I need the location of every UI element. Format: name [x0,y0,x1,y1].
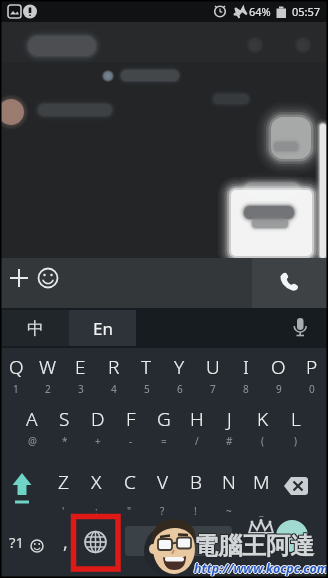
button[interactable] [78,518,114,568]
button[interactable]: 中 [2,310,69,346]
staticText: : [95,504,98,518]
staticText: http://www.kocpc.com.tw [194,560,328,577]
staticText: 8 [243,382,249,396]
staticText: 電腦王阿達 [195,531,315,561]
button[interactable]: E [64,351,97,397]
staticText: 1 [13,382,19,396]
staticText: ?1 [9,532,25,552]
button[interactable]: J [213,403,246,449]
staticText: Y [174,354,185,380]
staticText: ~ [226,504,232,518]
staticText: http://www.kocpc.com.tw [193,560,328,577]
staticText: 4 [111,382,117,396]
staticText: 電腦王阿達 [195,530,315,560]
staticText: = [161,434,167,448]
button[interactable]: T [130,351,163,397]
staticText: B [190,469,202,495]
staticText: 0 [309,382,315,396]
button[interactable]: N [212,466,245,518]
staticText: 3 [78,382,84,396]
button[interactable]: A [16,403,48,449]
staticText: ! [194,504,197,518]
button[interactable] [276,520,308,552]
staticText: " [127,504,132,518]
staticText: X [91,469,102,495]
staticText: ' [62,504,65,518]
button[interactable]: L [279,403,312,449]
staticText: J [227,406,232,432]
button[interactable] [0,258,252,308]
staticText: 電腦王阿達 [194,531,314,561]
staticText: G [157,406,171,432]
button[interactable]: Z [46,466,80,518]
staticText: 電腦王阿達 [193,530,313,560]
staticText: M [253,469,270,495]
button[interactable] [284,312,316,344]
button[interactable]: I [229,351,262,397]
staticText: 5 [144,382,150,396]
staticText: En [93,317,113,340]
button[interactable]: C [113,466,146,518]
button[interactable]: Q [0,351,32,397]
button[interactable]: S [48,403,81,449]
staticText: 電腦王阿達 [194,532,314,562]
staticText: ? [160,504,165,518]
staticText: http://www.kocpc.com.tw [195,560,328,577]
button[interactable]: K [246,403,279,449]
staticText: 電腦王阿達 [195,532,315,562]
staticText: O [271,354,286,380]
staticText: F [126,406,136,432]
button[interactable]: P [295,351,328,397]
button[interactable]: ?1 [4,518,56,568]
staticText: ( [261,434,264,448]
staticText: 中 [27,318,44,339]
staticText: A [26,406,38,432]
button[interactable] [0,22,328,62]
staticText: V [157,469,169,495]
staticText: W [39,354,57,380]
staticText: I [243,354,249,380]
button[interactable]: O [262,351,295,397]
staticText: R [108,354,120,380]
button[interactable]: U [196,351,229,397]
staticText: D [91,406,105,432]
staticText: H [190,406,204,432]
staticText: - [129,434,133,448]
button[interactable]: En [69,310,136,346]
button[interactable] [278,466,326,514]
button[interactable]: G [147,403,180,449]
button[interactable]: X [80,466,113,518]
button[interactable]: , [63,530,68,555]
button[interactable]: D [81,403,114,449]
button[interactable] [2,466,44,514]
staticText: http://www.kocpc.com.tw [194,559,328,576]
staticText: 6 [177,382,183,396]
staticText: / [195,434,199,448]
button[interactable]: M [245,466,278,518]
staticText: 9 [276,382,282,396]
staticText: * [62,434,68,448]
staticText: # [226,434,233,448]
button[interactable]: B [179,466,212,518]
staticText: @ [28,434,37,448]
staticText: Z [58,469,69,495]
staticText: S [59,406,70,432]
staticText: U [206,354,220,380]
staticText: ) [294,434,297,448]
staticText: 2 [45,382,51,396]
button[interactable] [125,526,232,556]
button[interactable]: F [114,403,147,449]
staticText: 電腦王阿達 [193,532,313,562]
staticText: P [306,354,318,380]
button[interactable]: Y [163,351,196,397]
button[interactable]: W [32,351,64,397]
button[interactable]: V [146,466,179,518]
staticText: Q [9,354,24,380]
staticText: 05:57 [292,4,321,19]
staticText: 64% [249,4,271,19]
staticText: _ [259,504,264,518]
button[interactable]: H [180,403,213,449]
staticText: 電腦王阿達 [193,531,313,561]
button[interactable]: R [97,351,130,397]
button[interactable] [252,258,328,308]
